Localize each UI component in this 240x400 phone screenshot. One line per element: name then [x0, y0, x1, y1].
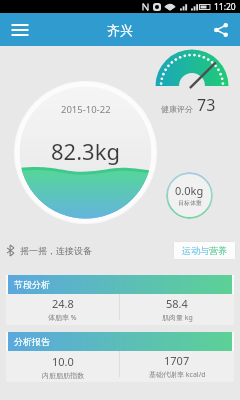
button[interactable]: Menu — [7, 18, 33, 42]
button[interactable]: 分析报告 — [8, 332, 232, 351]
staticText: 运动与 — [182, 245, 209, 256]
button[interactable]: 58.4 — [120, 294, 234, 325]
staticText: 分析报告 — [14, 336, 50, 347]
staticText: 2015-10-22 — [61, 103, 111, 116]
staticText: 0.0kg — [175, 183, 204, 198]
button[interactable]: 1707 — [120, 351, 234, 382]
button[interactable]: 运动与 — [173, 241, 236, 260]
button[interactable]: 节段分析 — [8, 275, 232, 294]
staticText: 体脂率 % — [48, 313, 77, 323]
button[interactable]: 0.0kg — [166, 172, 213, 219]
staticText: 健康评分 — [161, 104, 193, 114]
staticText: 1707 — [164, 353, 190, 368]
staticText: 节段分析 — [14, 279, 50, 290]
staticText: 摇一摇，连接设备 — [20, 245, 92, 256]
staticText: 82.3kg — [51, 136, 120, 166]
staticText: 肌肉量 kg — [162, 313, 193, 323]
button[interactable]: 24.8 — [6, 294, 119, 325]
staticText: 58.4 — [166, 296, 188, 311]
staticText: 齐兴 — [107, 22, 133, 38]
staticText: 73 — [197, 94, 216, 116]
staticText: 基础代谢率 kcal/d — [149, 370, 206, 380]
button[interactable]: Share — [210, 19, 232, 41]
staticText: 24.8 — [52, 296, 74, 311]
button[interactable]: 2015-10-22 — [14, 81, 157, 224]
staticText: 目标体重 — [178, 199, 202, 207]
staticText: 内脏脂肪指数 — [42, 371, 84, 380]
staticText: 10.0 — [52, 354, 74, 369]
staticText: 11:20 — [214, 1, 236, 13]
staticText: 营养 — [209, 245, 227, 256]
button[interactable]: 10.0 — [6, 351, 119, 382]
